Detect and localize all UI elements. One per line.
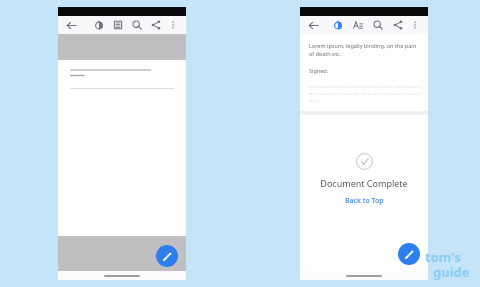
staticText: Lorem ipsum, legally binding, on the pai… [309, 42, 419, 58]
button[interactable]: Contrast [91, 17, 107, 33]
staticText: Document Complete [320, 177, 408, 189]
button[interactable]: Back to Top [342, 195, 387, 207]
button[interactable]: Document [110, 17, 126, 33]
button[interactable]: Text size [350, 17, 366, 33]
staticText: Back to Top [345, 196, 384, 206]
button[interactable]: Back [63, 17, 79, 33]
button[interactable]: Search [129, 17, 145, 33]
staticText: tom's [425, 248, 461, 266]
button[interactable]: Search [370, 17, 386, 33]
button[interactable]: More options [165, 17, 181, 33]
button[interactable]: Edit [156, 245, 178, 267]
staticText: Signed: [309, 67, 329, 74]
button[interactable]: More options [407, 17, 423, 33]
button[interactable]: Back [305, 17, 321, 33]
button[interactable]: Share [148, 17, 164, 33]
button[interactable]: Edit [398, 243, 420, 265]
button[interactable]: Contrast [330, 17, 346, 33]
button[interactable]: Share [390, 17, 406, 33]
staticText: guide [433, 263, 470, 281]
